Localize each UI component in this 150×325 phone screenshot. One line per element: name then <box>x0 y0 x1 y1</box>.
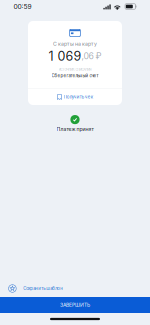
staticText: ЗАВЕРШИТЬ <box>60 302 90 308</box>
staticText: ,06 <box>81 51 93 61</box>
staticText: Сберегательный счет <box>51 73 98 78</box>
staticText: С карты на карту <box>53 41 97 47</box>
staticText: Платеж принят <box>56 126 93 132</box>
button[interactable]: ЗАВЕРШИТЬ <box>0 297 150 313</box>
button[interactable]: Сохранить шаблон <box>0 280 150 297</box>
staticText: 00:59 <box>13 2 31 11</box>
staticText: Получить чек <box>64 94 93 100</box>
staticText: Сохранить шаблон <box>23 286 63 291</box>
button[interactable]: Получить чек <box>28 89 122 105</box>
staticText: ₽ <box>93 51 101 61</box>
staticText: ИСТОЧНИК СПИСАНИЯ <box>58 68 91 72</box>
staticText: 1 069 <box>48 49 81 64</box>
